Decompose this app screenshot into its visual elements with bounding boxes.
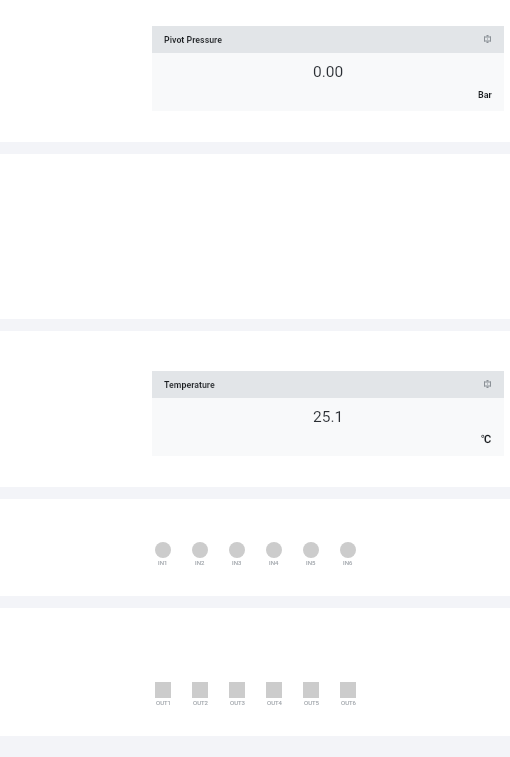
- button[interactable]: IN2: [192, 542, 208, 558]
- button[interactable]: IN1: [155, 542, 171, 558]
- staticText: 0.00: [313, 63, 344, 81]
- staticText: IN3: [232, 559, 242, 566]
- staticText: IN6: [343, 559, 353, 566]
- staticText: Pivot Pressure: [164, 35, 222, 45]
- staticText: OUT1: [156, 699, 171, 706]
- staticText: Temperature: [164, 380, 215, 390]
- staticText: Bar: [478, 90, 492, 101]
- staticText: OUT2: [193, 699, 208, 706]
- staticText: IN5: [306, 559, 316, 566]
- button[interactable]: Widget settings: [479, 32, 495, 48]
- button[interactable]: Temperature: [152, 371, 504, 398]
- staticText: OUT5: [304, 699, 319, 706]
- staticText: OUT4: [267, 699, 282, 706]
- button[interactable]: Pivot Pressure: [152, 26, 504, 53]
- staticText: OUT6: [341, 699, 356, 706]
- staticText: IN1: [158, 559, 168, 566]
- staticText: 25.1: [313, 408, 344, 426]
- button[interactable]: IN5: [303, 542, 319, 558]
- staticText: ℃: [481, 432, 492, 445]
- button[interactable]: IN3: [229, 542, 245, 558]
- staticText: IN4: [269, 559, 279, 566]
- staticText: OUT3: [230, 699, 245, 706]
- button[interactable]: Widget settings: [479, 377, 495, 393]
- button[interactable]: IN6: [340, 542, 356, 558]
- button[interactable]: IN4: [266, 542, 282, 558]
- staticText: IN2: [195, 559, 205, 566]
